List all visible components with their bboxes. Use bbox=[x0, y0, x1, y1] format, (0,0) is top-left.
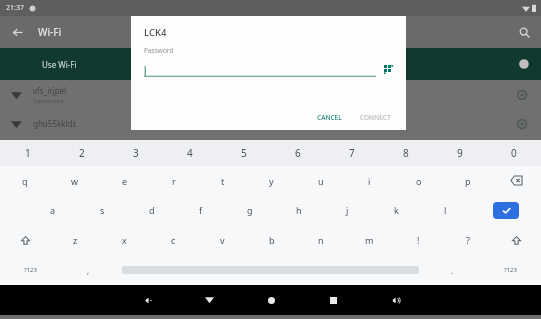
button[interactable]: Search bbox=[513, 21, 535, 43]
button[interactable]: t bbox=[198, 166, 247, 195]
button[interactable]: 2 bbox=[55, 140, 109, 166]
button[interactable]: s bbox=[78, 195, 127, 225]
staticText: 8 bbox=[403, 146, 409, 160]
staticText: x bbox=[122, 234, 127, 246]
button[interactable]: Backspace bbox=[492, 166, 541, 195]
staticText: CANCEL bbox=[317, 113, 342, 122]
button[interactable]: 0 bbox=[487, 140, 541, 166]
button[interactable]: v bbox=[198, 225, 247, 255]
button[interactable]: Volume up bbox=[383, 288, 407, 312]
button[interactable]: c bbox=[149, 225, 198, 255]
button[interactable]: Shift bbox=[0, 225, 50, 255]
button[interactable]: Enter bbox=[470, 195, 541, 225]
button[interactable]: k bbox=[372, 195, 421, 225]
button[interactable]: l bbox=[421, 195, 470, 225]
button[interactable]: ? bbox=[443, 225, 492, 255]
button[interactable]: ghu55kklds bbox=[0, 109, 541, 138]
staticText: z bbox=[73, 234, 78, 246]
button[interactable]: ?123 bbox=[480, 255, 541, 285]
button[interactable]: e bbox=[100, 166, 149, 195]
staticText: 9 bbox=[457, 146, 463, 160]
staticText: c bbox=[171, 234, 176, 246]
staticText: f bbox=[199, 204, 203, 216]
button[interactable]: 8 bbox=[379, 140, 433, 166]
staticText: 3 bbox=[133, 146, 139, 160]
button[interactable]: Space bbox=[116, 255, 425, 285]
staticText: . bbox=[451, 265, 454, 276]
button[interactable]: g bbox=[225, 195, 274, 225]
button[interactable]: 3 bbox=[109, 140, 163, 166]
staticText: Wi-Fi bbox=[38, 25, 62, 39]
button[interactable]: CONNECT bbox=[353, 109, 398, 126]
staticText: p bbox=[465, 175, 471, 187]
button[interactable]: vfs_irjpel bbox=[0, 80, 541, 109]
button[interactable]: Back bbox=[197, 288, 221, 312]
staticText: , bbox=[87, 265, 90, 276]
button[interactable]: Scan QR code bbox=[382, 63, 396, 77]
button[interactable]: x bbox=[100, 225, 149, 255]
button[interactable]: Home bbox=[259, 288, 283, 312]
staticText: CONNECT bbox=[360, 113, 391, 122]
staticText: u bbox=[318, 175, 324, 187]
button[interactable]: Network settings bbox=[513, 86, 531, 104]
button[interactable]: ?123 bbox=[0, 255, 61, 285]
button[interactable]: Recents bbox=[321, 288, 345, 312]
button[interactable]: i bbox=[345, 166, 394, 195]
staticText: a bbox=[50, 204, 56, 216]
button[interactable]: m bbox=[345, 225, 394, 255]
button[interactable]: 9 bbox=[433, 140, 487, 166]
staticText: k bbox=[394, 204, 399, 216]
staticText: Use Wi-Fi bbox=[42, 59, 77, 70]
button[interactable]: y bbox=[247, 166, 296, 195]
button[interactable]: h bbox=[274, 195, 323, 225]
button[interactable]: p bbox=[443, 166, 492, 195]
staticText: 7 bbox=[349, 146, 355, 160]
button[interactable]: Volume down bbox=[135, 288, 159, 312]
button[interactable]: f bbox=[176, 195, 225, 225]
button[interactable]: Network settings bbox=[513, 115, 531, 133]
staticText: m bbox=[365, 234, 374, 246]
button[interactable]: Shift bbox=[492, 225, 541, 255]
staticText: l bbox=[444, 204, 447, 216]
button[interactable]: a bbox=[28, 195, 78, 225]
button[interactable]: 1 bbox=[0, 140, 55, 166]
button[interactable]: j bbox=[323, 195, 372, 225]
staticText: b bbox=[269, 234, 275, 246]
staticText: g bbox=[247, 204, 253, 216]
staticText: n bbox=[318, 234, 324, 246]
button[interactable]: Use Wi-Fi bbox=[0, 48, 541, 80]
button[interactable]: w bbox=[50, 166, 100, 195]
staticText: ?123 bbox=[24, 266, 37, 274]
button[interactable]: 4 bbox=[163, 140, 217, 166]
staticText: t bbox=[221, 175, 225, 187]
staticText: 2 bbox=[79, 146, 85, 160]
button[interactable]: 6 bbox=[271, 140, 325, 166]
staticText: v bbox=[220, 234, 225, 246]
button[interactable]: d bbox=[127, 195, 176, 225]
button[interactable]: ! bbox=[394, 225, 443, 255]
button[interactable]: q bbox=[0, 166, 50, 195]
button[interactable]: CANCEL bbox=[310, 109, 349, 126]
staticText: LCK4 bbox=[144, 26, 167, 39]
staticText: s bbox=[100, 204, 105, 216]
button[interactable]: u bbox=[296, 166, 345, 195]
staticText: 5 bbox=[241, 146, 247, 160]
staticText: d bbox=[149, 204, 155, 216]
button[interactable]: n bbox=[296, 225, 345, 255]
button[interactable]: z bbox=[50, 225, 100, 255]
staticText: h bbox=[296, 204, 302, 216]
button[interactable]: r bbox=[149, 166, 198, 195]
button[interactable]: 7 bbox=[325, 140, 379, 166]
button[interactable]: b bbox=[247, 225, 296, 255]
button[interactable]: 5 bbox=[217, 140, 271, 166]
staticText: vfs_irjpel bbox=[33, 85, 67, 96]
button[interactable]: o bbox=[394, 166, 443, 195]
staticText: j bbox=[346, 204, 349, 216]
staticText: y bbox=[269, 175, 274, 187]
staticText: i bbox=[368, 175, 371, 187]
staticText: 1 bbox=[25, 146, 31, 160]
button[interactable]: Back bbox=[6, 21, 28, 43]
staticText: o bbox=[416, 175, 422, 187]
